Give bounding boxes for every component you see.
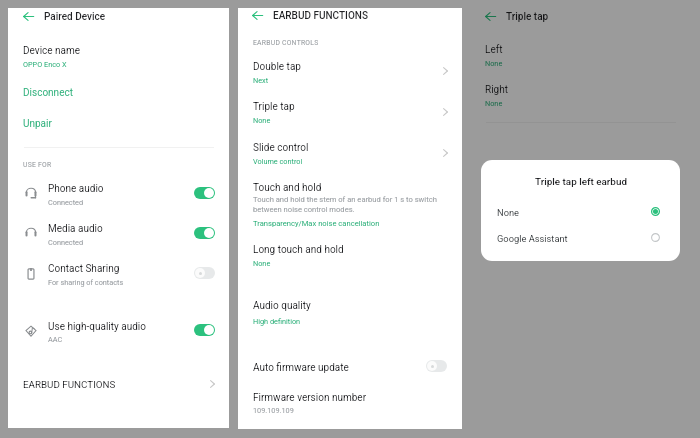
- staticText: Connected: [48, 198, 84, 207]
- button[interactable]: [238, 296, 462, 328]
- staticText: Google Assistant: [497, 233, 568, 244]
- staticText: Audio quality: [253, 300, 311, 312]
- staticText: Unpair: [23, 118, 52, 130]
- button[interactable]: [8, 218, 229, 250]
- staticText: Right: [485, 84, 508, 96]
- button[interactable]: [8, 374, 229, 398]
- button[interactable]: [16, 113, 136, 134]
- staticText: EARBUD FUNCTIONS: [273, 10, 368, 22]
- staticText: Connected: [48, 238, 84, 247]
- staticText: Triple tap left earbud: [535, 176, 627, 188]
- button[interactable]: [426, 360, 447, 372]
- staticText: Auto firmware update: [253, 362, 349, 374]
- staticText: Double tap: [253, 61, 301, 73]
- button[interactable]: [8, 178, 229, 210]
- staticText: Contact Sharing: [48, 263, 120, 275]
- staticText: High definition: [253, 317, 301, 326]
- button[interactable]: [194, 324, 215, 336]
- button[interactable]: [238, 356, 462, 380]
- staticText: Transparency/Max noise cancellation: [253, 219, 380, 228]
- staticText: Triple tap: [253, 101, 295, 113]
- staticText: None: [253, 116, 271, 125]
- button[interactable]: [16, 5, 196, 27]
- staticText: EARBUD FUNCTIONS: [23, 379, 116, 390]
- staticText: Phone audio: [48, 183, 104, 195]
- other: Back: [23, 12, 34, 21]
- staticText: Triple tap: [506, 11, 549, 23]
- button[interactable]: [238, 136, 462, 168]
- staticText: USE FOR: [23, 161, 52, 169]
- staticText: AAC: [48, 335, 63, 344]
- staticText: None: [497, 207, 519, 218]
- staticText: Volume control: [253, 157, 303, 166]
- button[interactable]: [194, 267, 215, 279]
- button[interactable]: [238, 95, 462, 127]
- staticText: Paired Device: [44, 11, 106, 23]
- staticText: 109.109.109: [253, 406, 294, 415]
- staticText: OPPO Enco X: [23, 60, 67, 69]
- button[interactable]: [481, 227, 679, 249]
- other: Back: [252, 11, 263, 20]
- staticText: EARBUD CONTROLS: [253, 39, 319, 47]
- staticText: Firmware version number: [253, 392, 367, 404]
- staticText: Media audio: [48, 223, 103, 235]
- staticText: For sharing of contacts: [48, 278, 124, 287]
- button[interactable]: [194, 187, 215, 199]
- button[interactable]: [238, 55, 462, 87]
- staticText: Next: [253, 76, 269, 85]
- staticText: None: [485, 59, 503, 68]
- staticText: Long touch and hold: [253, 244, 344, 256]
- button[interactable]: [238, 176, 462, 226]
- button[interactable]: [246, 4, 426, 26]
- button[interactable]: [8, 258, 229, 290]
- staticText: Use high-quality audio: [48, 321, 146, 333]
- staticText: None: [253, 259, 271, 268]
- button[interactable]: [478, 5, 658, 27]
- staticText: Disconnect: [23, 87, 73, 99]
- staticText: Slide control: [253, 142, 309, 154]
- staticText: None: [485, 99, 503, 108]
- button[interactable]: [238, 240, 462, 272]
- staticText: Device name: [23, 45, 81, 57]
- staticText: Touch and hold: [253, 182, 322, 194]
- other: Back: [485, 12, 496, 21]
- staticText: Left: [485, 44, 503, 56]
- button[interactable]: [194, 227, 215, 239]
- button[interactable]: [8, 316, 229, 348]
- button[interactable]: [481, 201, 679, 223]
- staticText: Touch and hold the stem of an earbud for…: [253, 195, 441, 214]
- button[interactable]: [16, 82, 136, 103]
